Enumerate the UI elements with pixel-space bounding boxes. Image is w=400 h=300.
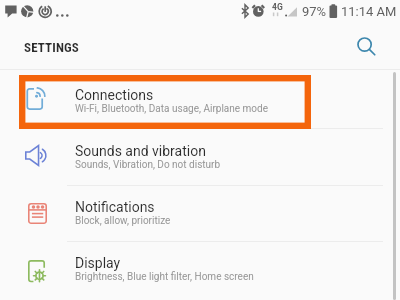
staticText: Display xyxy=(75,255,121,271)
staticText: Brightness, Blue light filter, Home scre… xyxy=(75,271,254,283)
staticText: 4G xyxy=(272,2,283,12)
button[interactable]: Search xyxy=(352,32,380,60)
staticText: Notifications xyxy=(75,199,155,215)
staticText: 11:14 AM xyxy=(341,4,397,19)
staticText: Sounds, Vibration, Do not disturb xyxy=(75,159,221,171)
staticText: Wi-Fi, Bluetooth, Data usage, Airplane m… xyxy=(75,103,268,115)
button[interactable]: Display xyxy=(0,241,400,297)
button[interactable]: Connections xyxy=(0,73,400,129)
staticText: Block, allow, prioritize xyxy=(75,215,171,227)
staticText: 97% xyxy=(302,4,327,19)
staticText: SETTINGS xyxy=(24,40,80,55)
staticText: Sounds and vibration xyxy=(75,143,206,159)
button[interactable]: Sounds and vibration xyxy=(0,129,400,185)
button[interactable]: Notifications xyxy=(0,185,400,241)
staticText: Connections xyxy=(75,87,154,103)
